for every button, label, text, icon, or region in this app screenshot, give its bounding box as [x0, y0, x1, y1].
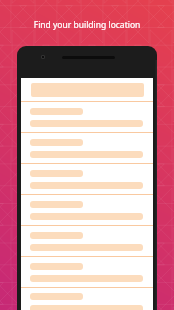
button[interactable]: Building list item [21, 288, 153, 310]
staticText: Find your building location [0, 19, 174, 31]
button[interactable] [21, 78, 153, 101]
button[interactable]: Building list item [21, 195, 153, 225]
button[interactable]: Building list item [21, 102, 153, 132]
button[interactable]: Building list item [21, 133, 153, 163]
button[interactable]: Building list item [21, 257, 153, 287]
button[interactable]: Building list item [21, 226, 153, 256]
button[interactable]: Building list item [21, 164, 153, 194]
